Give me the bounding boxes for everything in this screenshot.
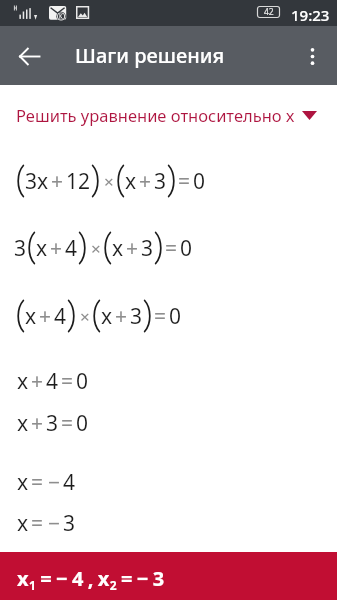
staticText: 3 (63, 509, 76, 531)
staticText: × (91, 237, 101, 260)
staticText: = (154, 302, 167, 331)
staticText: + (139, 167, 152, 196)
staticText: x (17, 367, 29, 389)
staticText: − (48, 468, 61, 490)
staticText: x (112, 234, 124, 263)
staticText: 3 (130, 302, 143, 331)
staticText: + (39, 302, 52, 331)
staticText: 0 (169, 302, 182, 331)
staticText: = (178, 167, 191, 196)
staticText: x (17, 468, 29, 490)
staticText: = (165, 234, 178, 263)
staticText: 12 (66, 167, 91, 196)
button[interactable]: Решить уравнение относительно x (0, 102, 317, 128)
staticText: 3 (46, 409, 59, 431)
staticText: × (104, 170, 114, 193)
staticText: = (31, 509, 44, 531)
staticText: 0 (76, 409, 89, 431)
staticText: = (61, 409, 74, 431)
staticText: 3x (25, 167, 49, 196)
staticText: 19:23 (291, 5, 330, 25)
staticText: Шаги решения (75, 42, 225, 69)
staticText: x (125, 167, 137, 196)
staticText: 4 (63, 468, 76, 490)
staticText: = (31, 468, 44, 490)
staticText: 0 (193, 167, 206, 196)
staticText: + (51, 167, 64, 196)
staticText: 0 (180, 234, 193, 263)
staticText: Решить уравнение относительно x (16, 104, 295, 126)
staticText: 4 (54, 302, 67, 331)
staticText: + (50, 234, 63, 263)
staticText: 42 (264, 6, 274, 18)
staticText: 3 (141, 234, 154, 263)
staticText: x (17, 409, 29, 431)
staticText: x (25, 302, 37, 331)
staticText: x (36, 234, 48, 263)
staticText: − (48, 509, 61, 531)
staticText: 0 (76, 367, 89, 389)
staticText: x (17, 509, 29, 531)
staticText: 3 (14, 234, 27, 263)
staticText: x (101, 302, 113, 331)
staticText: × (80, 305, 90, 328)
staticText: 3 (154, 167, 167, 196)
staticText: = (61, 367, 74, 389)
staticText: 4 (65, 234, 78, 263)
staticText: + (126, 234, 139, 263)
button[interactable]: Back (8, 35, 50, 77)
staticText: x1 = − 4 , x2 = − 3 (17, 565, 165, 594)
button[interactable]: More options (291, 35, 333, 77)
staticText: + (31, 367, 44, 389)
staticText: + (31, 409, 44, 431)
staticText: 4 (46, 367, 59, 389)
staticText: + (115, 302, 128, 331)
